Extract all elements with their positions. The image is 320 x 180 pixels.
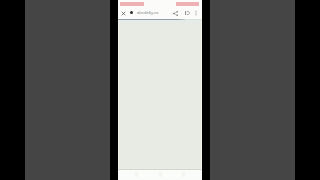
button[interactable]: More options — [191, 8, 201, 18]
button[interactable]: Home — [156, 170, 165, 179]
button[interactable]: Open in browser — [182, 8, 192, 18]
staticText: abcdefg.co — [137, 10, 159, 16]
button[interactable]: Recents — [179, 170, 188, 179]
button[interactable]: Close — [118, 8, 128, 18]
button[interactable]: Back — [132, 170, 141, 179]
button[interactable]: abcdefg.co — [129, 8, 159, 19]
button[interactable]: Share — [170, 8, 180, 18]
